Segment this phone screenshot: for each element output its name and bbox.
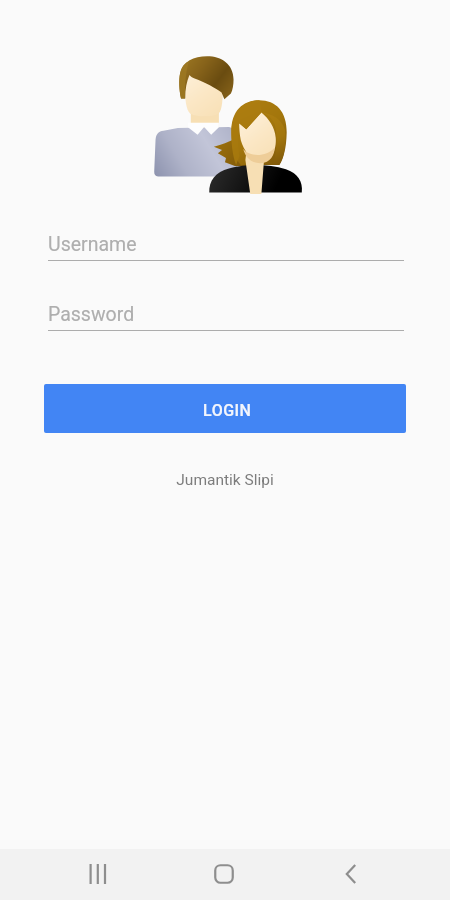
button[interactable]: Home bbox=[200, 850, 248, 898]
button[interactable]: LOGIN bbox=[44, 384, 406, 433]
button[interactable]: Recent apps bbox=[74, 850, 122, 898]
button[interactable]: Back bbox=[327, 850, 375, 898]
staticText: Password bbox=[48, 303, 135, 326]
staticText: Username bbox=[48, 233, 137, 256]
staticText: Jumantik Slipi bbox=[0, 471, 450, 489]
staticText: LOGIN bbox=[203, 401, 252, 420]
button[interactable]: Username bbox=[48, 233, 404, 261]
button[interactable]: Password bbox=[48, 303, 404, 331]
